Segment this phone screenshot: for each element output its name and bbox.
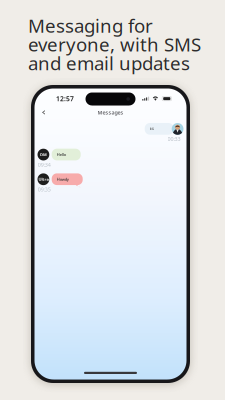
staticText: Ultra (38, 177, 48, 182)
button[interactable]: Back (34, 106, 51, 119)
staticText: 00:33 (167, 135, 180, 142)
staticText: Hi (150, 126, 154, 131)
staticText: 12:57 (56, 94, 74, 103)
staticText: Messages (97, 109, 123, 116)
staticText: Hello (57, 152, 66, 157)
staticText: 09:34 (38, 161, 51, 168)
staticText: and email updates (28, 51, 190, 75)
staticText: DM (40, 152, 47, 157)
staticText: Messaging for (28, 13, 153, 38)
staticText: everyone, with SMS (28, 32, 201, 57)
staticText: Howdy (57, 177, 69, 182)
staticText: 09:35 (38, 186, 51, 193)
